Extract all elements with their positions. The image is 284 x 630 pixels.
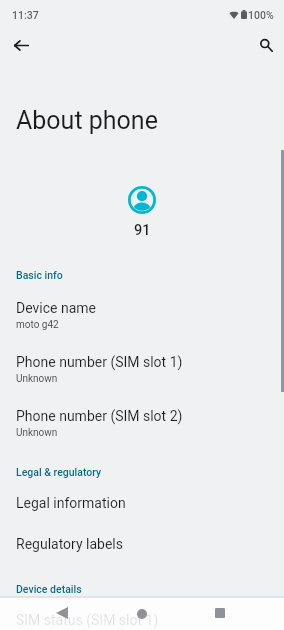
staticText: moto g42 xyxy=(16,319,59,331)
button[interactable]: Back xyxy=(42,595,82,630)
button[interactable]: Device name xyxy=(0,298,284,346)
staticText: Basic info xyxy=(16,269,63,281)
staticText: Phone number (SIM slot 2) xyxy=(16,408,183,424)
staticText: Regulatory labels xyxy=(16,536,123,552)
button[interactable]: Home xyxy=(122,596,162,630)
staticText: 100% xyxy=(248,9,274,21)
button[interactable]: Recents xyxy=(200,595,240,630)
button[interactable]: Regulatory labels xyxy=(0,534,284,570)
staticText: Device name xyxy=(16,300,96,316)
button[interactable]: SIM status (SIM slot 1) xyxy=(0,610,284,630)
button[interactable]: Legal information xyxy=(0,493,284,529)
staticText: Legal & regulatory xyxy=(16,466,102,478)
button[interactable]: Phone number (SIM slot 1) xyxy=(0,352,284,400)
staticText: 91 xyxy=(134,222,151,239)
staticText: Device details xyxy=(16,583,82,595)
staticText: About phone xyxy=(16,106,158,135)
staticText: Legal information xyxy=(16,495,126,511)
button[interactable]: Search xyxy=(246,25,284,65)
button[interactable]: Back xyxy=(1,25,41,65)
staticText: Unknown xyxy=(16,427,58,439)
staticText: SIM status (SIM slot 1) xyxy=(16,612,159,628)
staticText: Phone number (SIM slot 1) xyxy=(16,354,183,370)
button[interactable]: Phone number (SIM slot 2) xyxy=(0,406,284,454)
staticText: 11:37 xyxy=(12,9,39,21)
staticText: Unknown xyxy=(16,373,58,385)
